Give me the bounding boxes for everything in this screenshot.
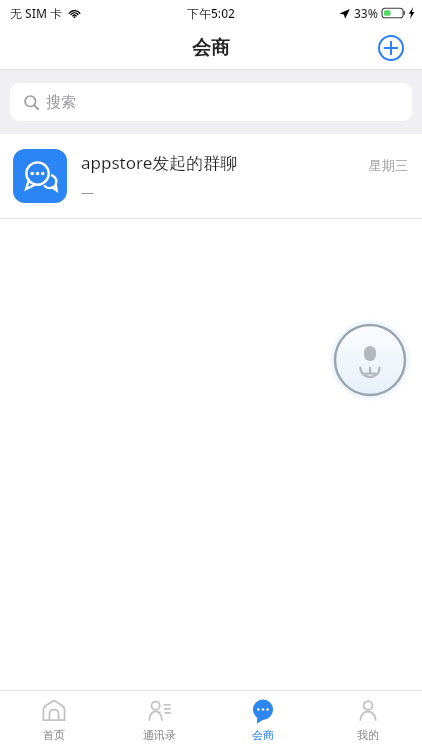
- staticText: 33%: [354, 5, 378, 21]
- button[interactable]: 会商: [213, 691, 313, 750]
- staticText: —: [81, 183, 95, 201]
- staticText: 会商: [252, 728, 274, 742]
- staticText: 会商: [192, 36, 230, 60]
- staticText: 无 SIM 卡: [10, 5, 63, 21]
- button[interactable]: 通讯录: [109, 691, 209, 750]
- staticText: appstore发起的群聊: [81, 151, 238, 174]
- button[interactable]: Voice input: [329, 319, 411, 401]
- button[interactable]: 首页: [4, 691, 104, 750]
- staticText: 首页: [43, 728, 65, 742]
- button[interactable]: 我的: [318, 691, 418, 750]
- staticText: 通讯录: [143, 728, 176, 742]
- button[interactable]: appstore发起的群聊: [0, 134, 422, 218]
- button[interactable]: 搜索: [10, 83, 412, 121]
- staticText: 下午5:02: [187, 5, 235, 21]
- staticText: 我的: [357, 728, 379, 742]
- staticText: 搜索: [46, 93, 76, 112]
- button[interactable]: New chat: [374, 31, 408, 65]
- staticText: 星期三: [369, 157, 408, 173]
